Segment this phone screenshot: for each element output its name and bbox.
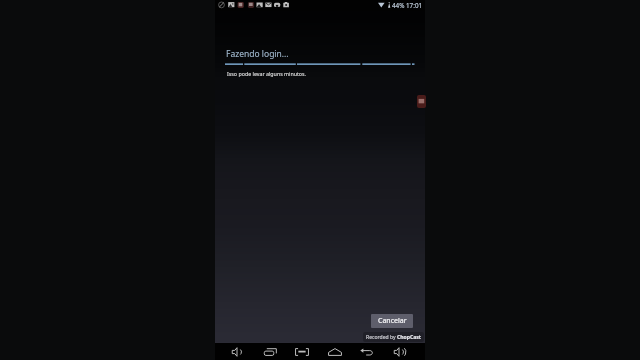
button[interactable]: Volume down <box>222 343 252 360</box>
button[interactable]: Volume up <box>384 343 414 360</box>
button[interactable]: Recents <box>256 343 286 360</box>
staticText: Cancelar <box>378 316 407 326</box>
staticText: Isso pode levar alguns minutos. <box>227 70 307 77</box>
button[interactable]: Screen recorder <box>417 95 426 108</box>
button[interactable]: Cancelar <box>371 314 413 328</box>
staticText: ChopCast <box>397 334 422 341</box>
button[interactable]: Back <box>352 343 382 360</box>
staticText: 17:01 <box>406 1 423 10</box>
button[interactable]: Home <box>320 343 350 360</box>
staticText: 44% <box>392 1 405 10</box>
button[interactable]: Screenshot <box>287 343 317 360</box>
staticText: Fazendo login... <box>226 48 289 60</box>
staticText: Recorded by <box>366 334 397 341</box>
